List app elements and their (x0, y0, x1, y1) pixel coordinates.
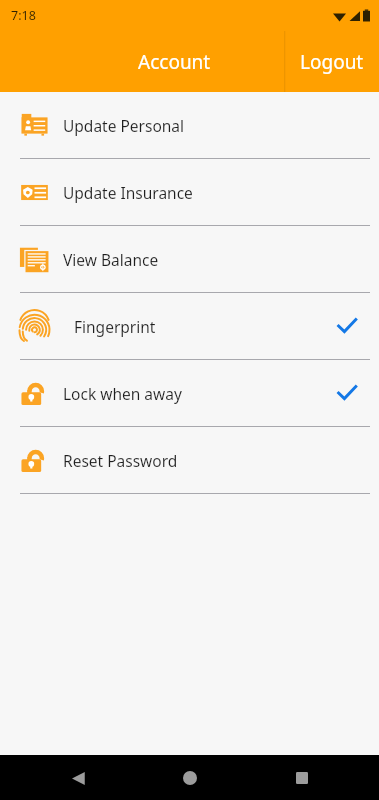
staticText: Lock when away (63, 383, 182, 404)
staticText: View Balance (63, 249, 159, 270)
button[interactable]: Update Personal (0, 92, 379, 158)
staticText: Logout (300, 49, 364, 75)
staticText: Fingerprint (74, 316, 156, 337)
button[interactable]: Back (60, 759, 98, 797)
button[interactable]: Fingerprint (0, 293, 379, 359)
button[interactable]: Home (171, 759, 209, 797)
staticText: Update Personal (63, 115, 185, 136)
button[interactable]: Recent apps (283, 759, 321, 797)
staticText: 7:18 (11, 7, 36, 24)
button[interactable]: View Balance (0, 226, 379, 292)
button[interactable]: Reset Password (0, 427, 379, 493)
button[interactable]: Logout (284, 31, 379, 92)
button[interactable]: Lock when away (0, 360, 379, 426)
staticText: Reset Password (63, 450, 178, 471)
staticText: Update Insurance (63, 182, 193, 203)
staticText: Account (138, 49, 211, 75)
button[interactable]: Update Insurance (0, 159, 379, 225)
